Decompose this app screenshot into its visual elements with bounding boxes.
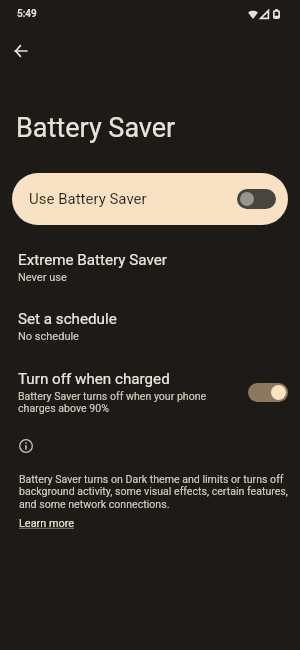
button[interactable]: Set a schedule <box>0 305 300 353</box>
staticText: Extreme Battery Saver <box>18 251 167 269</box>
staticText: Set a schedule <box>18 310 117 328</box>
staticText: Battery Saver <box>16 112 176 144</box>
button[interactable]: Use Battery Saver <box>12 173 288 225</box>
button[interactable]: Extreme Battery Saver <box>0 246 300 294</box>
button[interactable]: Learn more <box>19 517 75 530</box>
staticText: 5:49 <box>17 8 37 20</box>
staticText: Battery Saver turns off when your phone … <box>18 390 240 415</box>
staticText: Turn off when charged <box>18 370 170 388</box>
staticText: No schedule <box>18 330 79 343</box>
button[interactable]: Turn off when charged <box>0 365 300 423</box>
button[interactable]: Back <box>4 34 37 67</box>
staticText: Use Battery Saver <box>29 190 147 208</box>
staticText: Learn more <box>19 517 75 530</box>
staticText: Never use <box>18 271 67 284</box>
staticText: Battery Saver turns on Dark theme and li… <box>19 473 292 511</box>
